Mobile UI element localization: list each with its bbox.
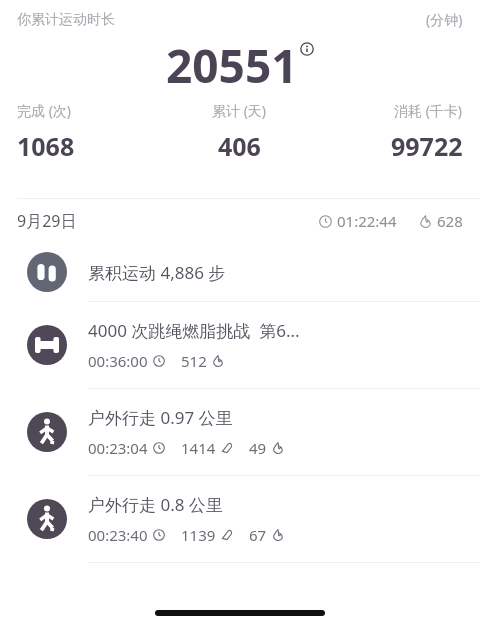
staticText: 00:23:40 (88, 525, 148, 545)
staticText: 628 (437, 211, 463, 231)
staticText: 20551 (166, 34, 298, 97)
staticText: 00:23:04 (88, 438, 148, 458)
staticText: 406 (218, 129, 261, 163)
staticText: 户外行走 0.8 公里 (88, 493, 223, 516)
staticText: 67 (249, 525, 267, 545)
staticText: 消耗 (千卡) (394, 101, 463, 120)
staticText: 00:36:00 (88, 351, 148, 371)
staticText: 累计 (天) (212, 101, 267, 120)
button[interactable]: 户外行走 0.97 公里 (0, 389, 480, 476)
staticText: 49 (249, 438, 267, 458)
button[interactable]: 说明 (300, 42, 314, 56)
staticText: 完成 (次) (17, 101, 72, 120)
staticText: 累积运动 4,886 步 (88, 261, 226, 284)
button[interactable]: 户外行走 0.8 公里 (0, 476, 480, 563)
button[interactable]: 累积运动 4,886 步 (0, 243, 480, 302)
staticText: 户外行走 0.97 公里 (88, 406, 233, 429)
staticText: 99722 (391, 129, 463, 163)
staticText: 4000 次跳绳燃脂挑战 第6... (88, 319, 300, 342)
staticText: 9月29日 (17, 210, 77, 232)
staticText: 1139 (181, 525, 216, 545)
staticText: (分钟) (426, 10, 463, 29)
staticText: 1414 (181, 438, 216, 458)
staticText: 01:22:44 (337, 211, 397, 231)
button[interactable]: 4000 次跳绳燃脂挑战 第6... (0, 302, 480, 389)
staticText: 512 (181, 351, 207, 371)
staticText: 1068 (17, 129, 75, 163)
staticText: 你累计运动时长 (17, 11, 115, 29)
